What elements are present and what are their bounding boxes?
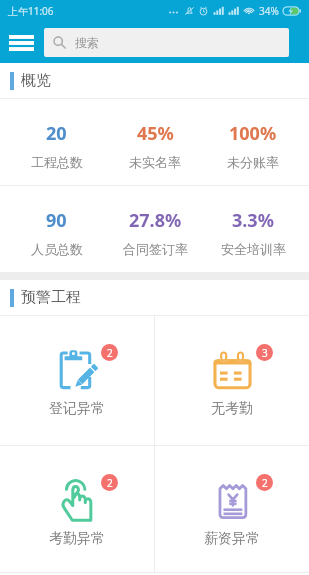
staticText: 无考勤 xyxy=(211,400,253,418)
button[interactable]: 27.8% xyxy=(106,186,204,272)
staticText: 合同签订率 xyxy=(123,241,188,257)
staticText: 2 xyxy=(107,346,113,360)
button[interactable]: 3.3% xyxy=(204,186,302,272)
button[interactable]: 90 xyxy=(7,186,106,272)
staticText: 3.3% xyxy=(232,208,274,233)
staticText: 考勤异常 xyxy=(49,530,105,548)
staticText: 100% xyxy=(229,121,277,146)
staticText: 概览 xyxy=(21,71,51,90)
staticText: 未分账率 xyxy=(227,154,279,170)
staticText: 90 xyxy=(46,208,67,233)
button[interactable]: 3 xyxy=(155,316,309,445)
staticText: 上午11:06 xyxy=(8,4,54,18)
button[interactable]: 100% xyxy=(204,99,302,185)
staticText: 人员总数 xyxy=(31,241,83,257)
staticText: 预警工程 xyxy=(21,288,81,307)
staticText: 3 xyxy=(262,346,268,360)
staticText: 2 xyxy=(107,476,113,490)
button[interactable]: 45% xyxy=(106,99,204,185)
button[interactable]: 2 xyxy=(0,316,154,445)
staticText: 2 xyxy=(262,476,268,490)
staticText: 27.8% xyxy=(129,208,182,233)
staticText: 登记异常 xyxy=(49,400,105,418)
staticText: 安全培训率 xyxy=(221,241,286,257)
button[interactable]: 2 xyxy=(155,446,309,572)
staticText: 工程总数 xyxy=(31,154,83,170)
staticText: 薪资异常 xyxy=(204,530,260,548)
staticText: 45% xyxy=(137,121,174,146)
staticText: 未实名率 xyxy=(129,154,181,170)
staticText: 20 xyxy=(46,121,67,146)
staticText: 34% xyxy=(259,4,279,18)
button[interactable]: 2 xyxy=(0,446,154,572)
staticText: 搜索 xyxy=(75,35,99,50)
button[interactable]: 20 xyxy=(7,99,106,185)
button[interactable]: 搜索 xyxy=(44,28,289,57)
button[interactable]: Menu xyxy=(4,26,38,60)
